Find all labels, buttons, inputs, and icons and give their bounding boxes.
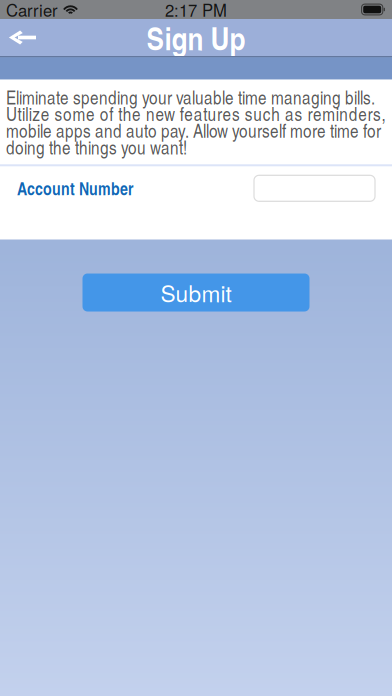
staticText: Utilize some of the new features such as… [6, 101, 385, 126]
staticText: doing the things you want! [6, 134, 187, 160]
button[interactable]: Back [0, 19, 45, 56]
button[interactable]: Submit [82, 273, 309, 311]
staticText: Submit [160, 276, 231, 309]
staticText: mobile apps and auto pay. Allow yourself… [6, 117, 381, 143]
staticText: Carrier [6, 0, 58, 21]
staticText: Sign Up [146, 15, 245, 60]
staticText: 2:17 PM [165, 0, 227, 21]
staticText: Eliminate spending your valuable time ma… [6, 84, 375, 110]
staticText: Account Number [17, 176, 134, 201]
